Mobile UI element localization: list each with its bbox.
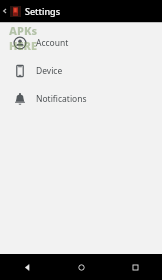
button[interactable]: Navigate up [0, 0, 10, 22]
staticText: HERE [9, 38, 37, 53]
button[interactable]: Back [0, 254, 54, 280]
button[interactable]: Account [0, 29, 162, 57]
button[interactable]: Device [0, 57, 162, 85]
staticText: Account [36, 37, 69, 49]
button[interactable]: Notifications [0, 85, 162, 113]
staticText: Device [36, 65, 63, 77]
staticText: Settings [25, 5, 61, 17]
staticText: APKs [9, 23, 38, 38]
button[interactable]: Recent apps [108, 254, 162, 280]
staticText: Notifications [36, 93, 87, 105]
button[interactable]: Home [54, 254, 108, 280]
